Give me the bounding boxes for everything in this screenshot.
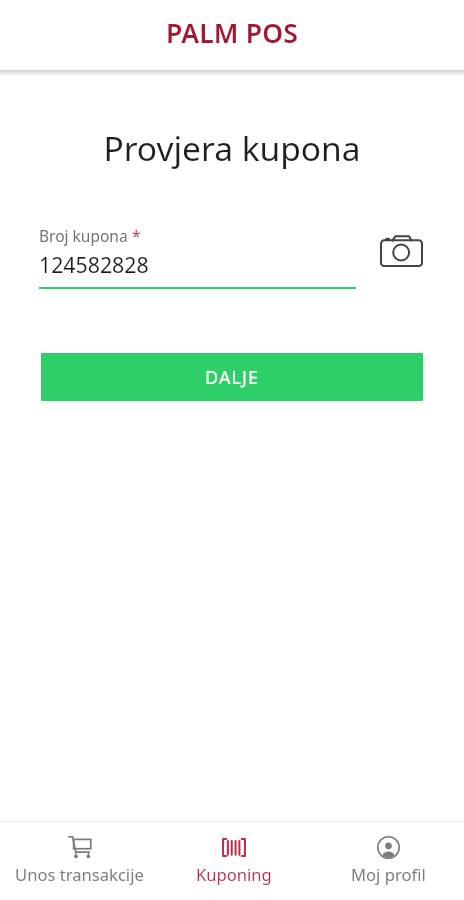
staticText: * (132, 225, 141, 246)
staticText: DALJE (205, 365, 260, 390)
button[interactable]: Scan coupon with camera (372, 222, 430, 280)
staticText: Unos transakcije (15, 863, 144, 886)
button[interactable]: Kuponing (157, 822, 311, 900)
button[interactable]: Broj kupona (39, 225, 356, 289)
staticText: 124582828 (39, 250, 149, 279)
staticText: Kuponing (196, 863, 272, 886)
staticText: PALM POS (166, 15, 299, 51)
staticText: Provjera kupona (0, 125, 464, 171)
button[interactable]: Unos transakcije (2, 822, 156, 900)
staticText: Moj profil (351, 863, 426, 886)
button[interactable]: DALJE (41, 353, 423, 401)
button[interactable]: Moj profil (311, 822, 464, 900)
staticText: Broj kupona (39, 225, 128, 246)
